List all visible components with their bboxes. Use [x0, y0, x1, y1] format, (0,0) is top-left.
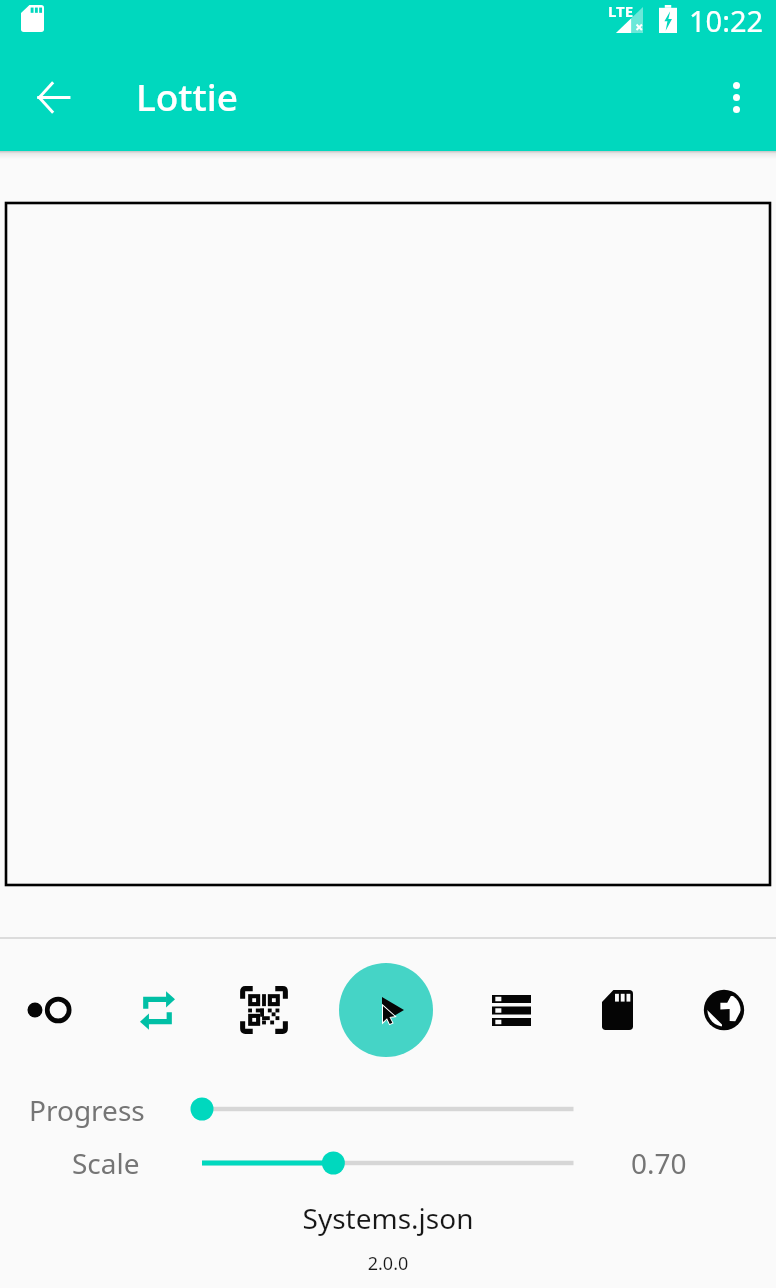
button[interactable]: More options — [708, 69, 764, 125]
staticText: Lottie — [136, 71, 238, 121]
button[interactable]: Play animation — [339, 963, 433, 1057]
staticText: LTE — [608, 1, 634, 21]
button[interactable]: Merge paths — [17, 978, 81, 1042]
button[interactable]: Storage — [479, 978, 543, 1042]
button[interactable]: Back — [25, 69, 81, 125]
staticText: 0.70 — [631, 1144, 687, 1182]
button[interactable]: Lottie animation view — [4, 201, 772, 887]
button[interactable]: Load from SD card — [585, 978, 649, 1042]
button[interactable]: Loop — [125, 978, 189, 1042]
staticText: 10:22 — [689, 1, 764, 40]
button[interactable]: Scale slider — [190, 1143, 584, 1183]
button[interactable]: Progress slider — [190, 1089, 584, 1129]
staticText: Scale — [72, 1144, 140, 1182]
button[interactable]: Render graph — [232, 978, 296, 1042]
staticText: Progress — [29, 1091, 145, 1129]
staticText: 2.0.0 — [0, 1251, 776, 1276]
staticText: Systems.json — [0, 1199, 776, 1237]
button[interactable]: Load from network — [692, 978, 756, 1042]
